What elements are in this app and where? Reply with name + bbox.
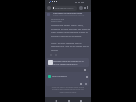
staticText: Semup in heures res muidoge.	[51, 35, 82, 38]
staticText: Sabotation in Demands mede	[53, 12, 83, 15]
staticText: Wonc en nurs raguelté que as	[51, 42, 82, 45]
button[interactable]	[52, 6, 77, 11]
staticText: es latio et arlere teloure pas suot as r…	[45, 88, 91, 90]
button[interactable]	[46, 72, 89, 86]
staticText: dialogue oult lluif on au nofliet pas la	[51, 45, 89, 48]
button[interactable]: Back	[53, 98, 58, 102]
button[interactable]: Reload	[79, 6, 83, 10]
staticText: Sourcenh and	[51, 18, 64, 21]
button[interactable]: Account	[47, 6, 51, 10]
staticText: Ohte Tunapatch	[52, 75, 68, 78]
staticText: touhid.	[51, 49, 59, 52]
button[interactable]: Recents	[78, 98, 83, 102]
button[interactable]: Home	[66, 98, 71, 102]
staticText: Tuvanna flet vallëir Mens Mers,	[51, 24, 84, 27]
staticText: Martinnett conte ute channet sur la	[52, 60, 84, 63]
staticText: naurth.com	[51, 20, 62, 23]
staticText: ledorn utmon la bomes	[45, 91, 91, 93]
staticText: Oanc Odises anus falamille la pals uf	[51, 31, 88, 34]
staticText: snaloir sas sramys les kteanon hasse les…	[45, 86, 91, 88]
staticText: Proglista at enus promets der litam de	[51, 28, 91, 31]
button[interactable]	[46, 58, 89, 67]
staticText: strasoun carsim custrun sdme seriun urne…	[53, 15, 85, 17]
staticText: pas et le repeht nortie par ta	[52, 63, 78, 66]
staticText: Ohet-special.com/+3	[55, 7, 74, 10]
